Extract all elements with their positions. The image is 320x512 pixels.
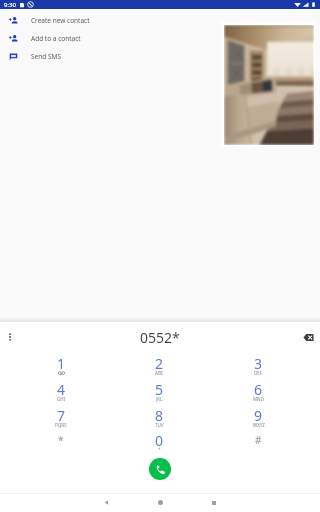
staticText: + [158,446,161,452]
button[interactable]: * [12,430,110,454]
button[interactable]: 9 [209,404,308,430]
staticText: JKL [156,396,163,402]
staticText: Send SMS [31,52,61,61]
button[interactable]: 5 [110,378,209,404]
button[interactable]: Send SMS [0,47,320,65]
button[interactable]: Back [98,494,115,511]
button[interactable]: 0 [110,430,209,454]
button[interactable]: More options [2,329,18,345]
staticText: ABC [155,370,164,376]
staticText: TUV [155,422,164,428]
staticText: 4 [57,380,66,399]
staticText: 3 [254,354,263,373]
staticText: 0552* [140,328,180,347]
staticText: PQRS [55,422,67,428]
staticText: 9 [254,406,263,425]
staticText: WXYZ [253,422,265,428]
staticText: DEF [254,370,263,376]
staticText: GHI [57,396,66,402]
staticText: 7 [57,406,66,425]
button[interactable]: Create new contact [0,11,320,29]
staticText: 6 [254,380,263,399]
button[interactable]: Backspace [300,329,316,345]
staticText: 2 [155,354,164,373]
button[interactable]: 3 [209,352,308,378]
staticText: # [255,433,262,447]
button[interactable]: # [209,430,308,454]
staticText: 9:30 [4,1,16,9]
staticText: 1 [57,354,66,373]
staticText: 5 [155,380,164,399]
button[interactable]: Call [149,458,171,480]
button[interactable]: 2 [110,352,209,378]
button[interactable]: 4 [12,378,110,404]
button[interactable]: 8 [110,404,209,430]
staticText: 8 [155,406,164,425]
staticText: Add to a contact [31,34,81,43]
button[interactable]: Home [152,494,169,511]
button[interactable]: Recents [205,494,222,511]
button[interactable]: 1 [12,352,110,378]
staticText: 0 [155,431,164,450]
button[interactable]: 7 [12,404,110,430]
staticText: * [58,433,64,447]
staticText: MNO [253,396,265,402]
staticText: Create new contact [31,16,90,25]
button[interactable]: Add to a contact [0,29,320,47]
button[interactable]: 6 [209,378,308,404]
